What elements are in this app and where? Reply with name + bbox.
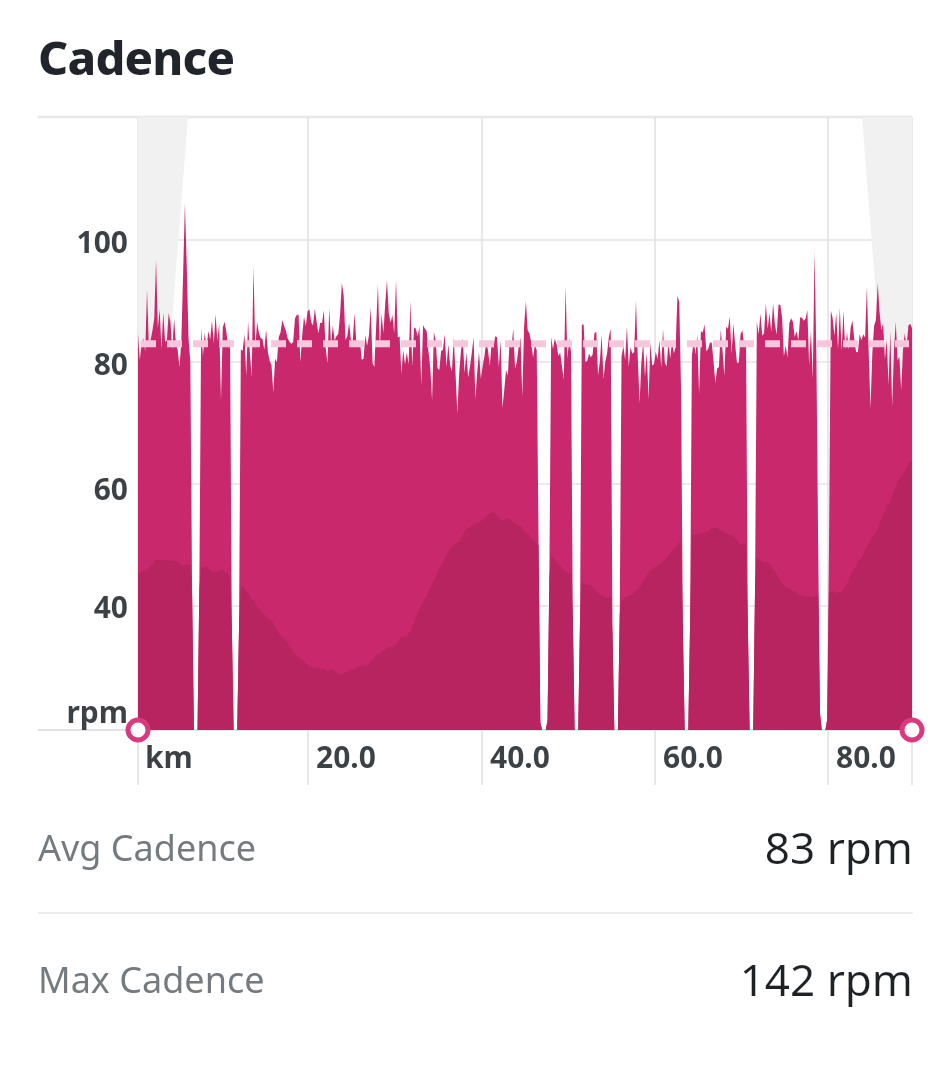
staticText: 83 rpm bbox=[764, 817, 913, 877]
staticText: Avg Cadence bbox=[38, 823, 257, 872]
staticText: 80.0 bbox=[836, 736, 896, 777]
staticText: km bbox=[145, 736, 193, 777]
staticText: 80 bbox=[93, 343, 128, 384]
staticText: Cadence bbox=[38, 25, 235, 89]
button[interactable]: Cadence bbox=[0, 0, 951, 110]
staticText: 40 bbox=[93, 586, 128, 627]
button[interactable]: Avg Cadence bbox=[0, 782, 951, 912]
staticText: rpm bbox=[66, 691, 128, 732]
button[interactable]: Max Cadence bbox=[0, 914, 951, 1044]
staticText: 142 rpm bbox=[739, 949, 913, 1009]
staticText: 60 bbox=[93, 468, 128, 509]
staticText: 40.0 bbox=[490, 736, 550, 777]
staticText: Max Cadence bbox=[38, 955, 265, 1004]
button[interactable]: Cadence over distance chart bbox=[0, 110, 951, 782]
staticText: 20.0 bbox=[316, 736, 376, 777]
staticText: 60.0 bbox=[663, 736, 723, 777]
staticText: 100 bbox=[76, 221, 128, 262]
